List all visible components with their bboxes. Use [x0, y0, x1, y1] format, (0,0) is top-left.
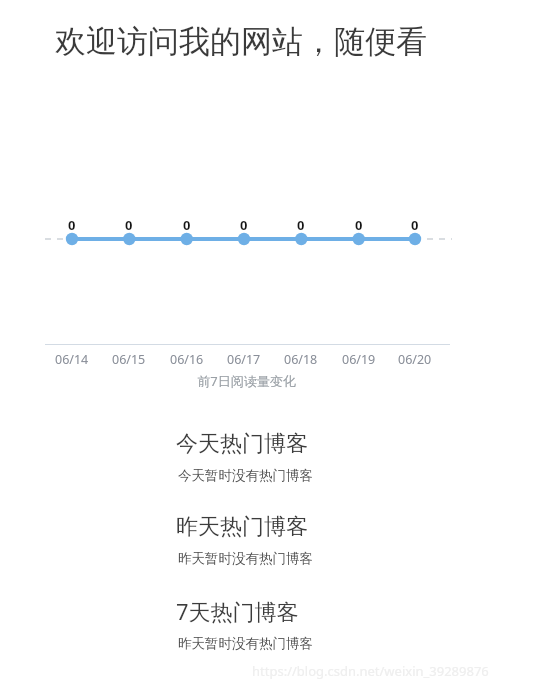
staticText: 06/14	[55, 351, 89, 368]
staticText: 前7日阅读量变化	[197, 372, 296, 390]
button[interactable]: 昨天热门博客	[0, 513, 533, 567]
staticText: 0	[355, 216, 363, 234]
staticText: 今天暂时没有热门博客	[178, 467, 313, 484]
staticText: 昨天暂时没有热门博客	[178, 635, 313, 652]
staticText: 06/20	[398, 351, 432, 368]
staticText: 昨天热门博客	[176, 513, 308, 541]
staticText: 今天热门博客	[176, 430, 308, 458]
staticText: 0	[125, 216, 133, 234]
staticText: https://blog.csdn.net/weixin_39289876	[252, 662, 489, 680]
button[interactable]: 7天热门博客	[0, 596, 533, 652]
staticText: 0	[68, 216, 76, 234]
staticText: 06/17	[227, 351, 261, 368]
button[interactable]: 今天热门博客	[0, 430, 533, 484]
staticText: 0	[240, 216, 248, 234]
staticText: 欢迎访问我的网站，随便看	[55, 22, 427, 61]
staticText: 06/15	[112, 351, 146, 368]
staticText: 0	[411, 216, 419, 234]
staticText: 0	[183, 216, 191, 234]
staticText: 06/19	[342, 351, 376, 368]
staticText: 06/16	[170, 351, 204, 368]
staticText: 06/18	[284, 351, 318, 368]
staticText: 昨天暂时没有热门博客	[178, 550, 313, 567]
staticText: 0	[297, 216, 305, 234]
staticText: 7天热门博客	[176, 596, 299, 626]
